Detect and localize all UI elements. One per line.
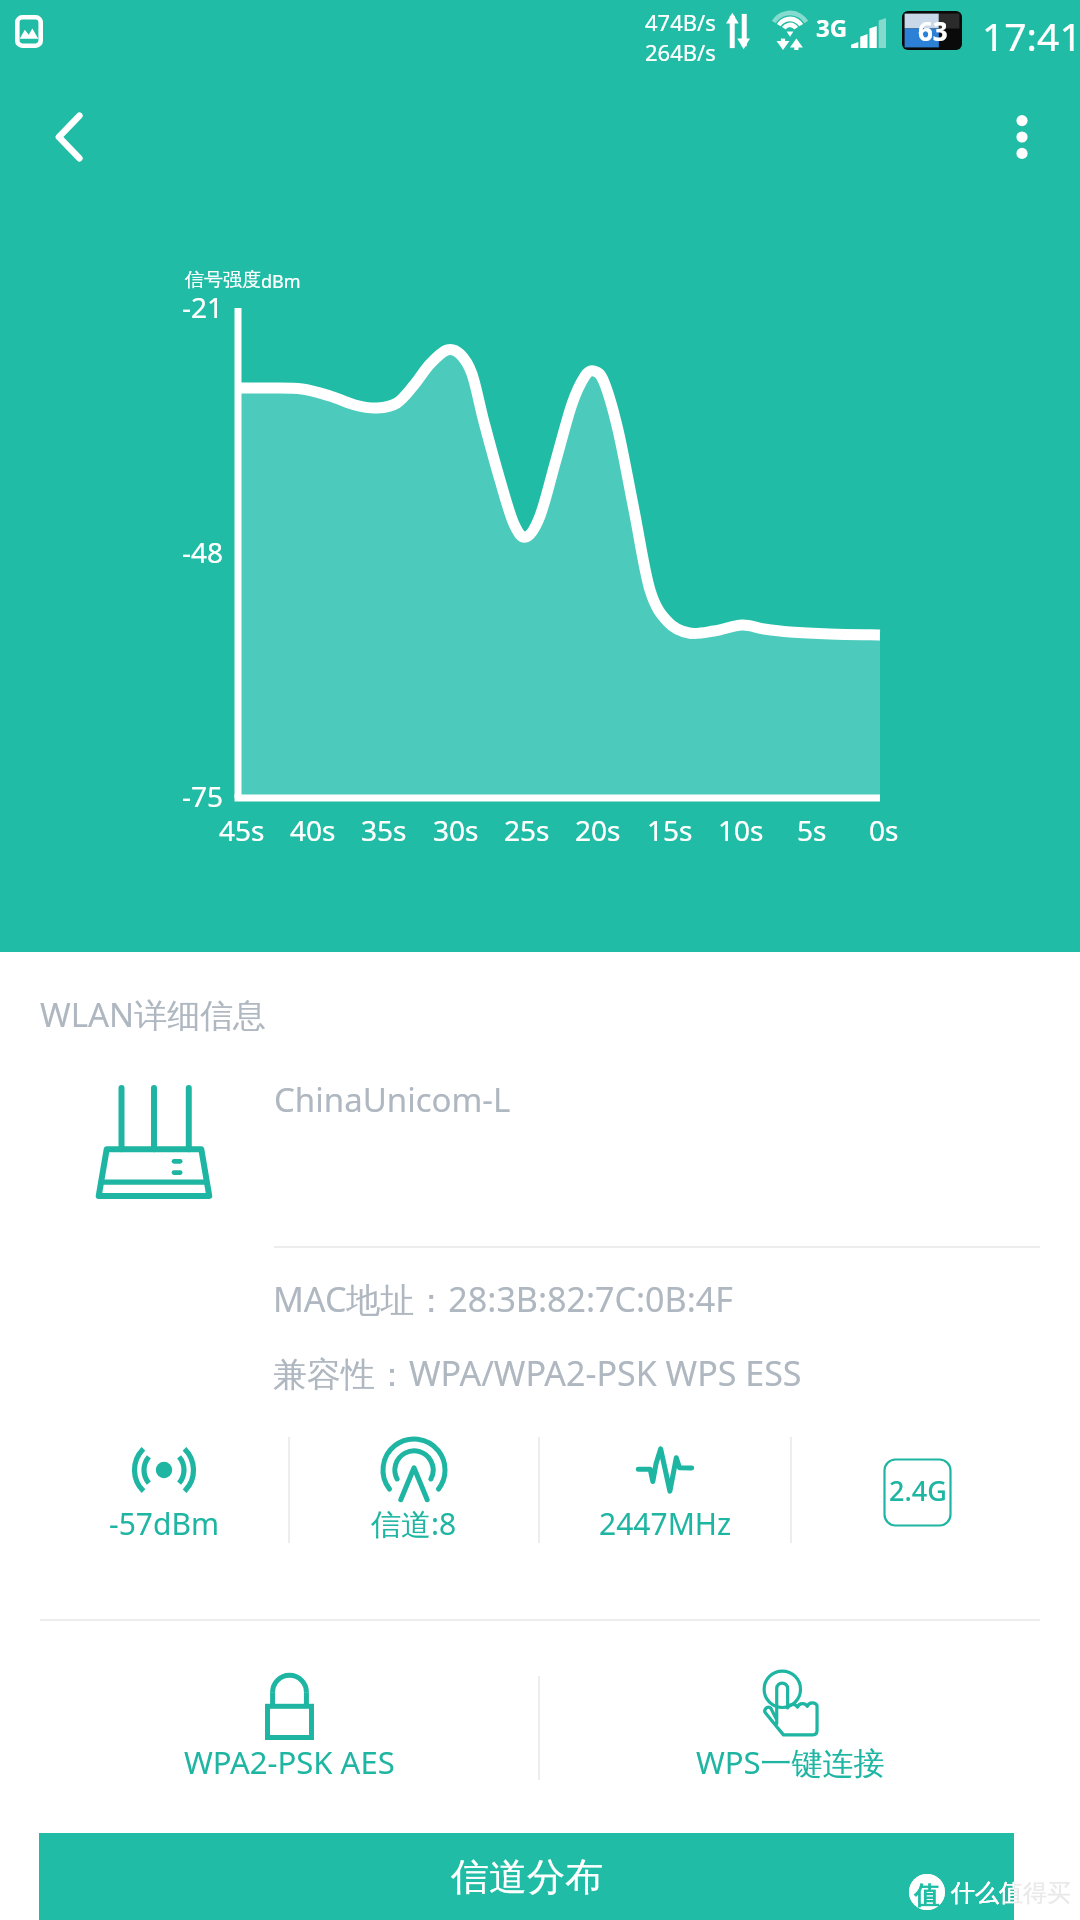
staticText: WPA2-PSK AES <box>184 1741 395 1783</box>
staticText: dBm <box>261 269 301 294</box>
staticText: -48 <box>182 533 224 571</box>
staticText: 45s <box>219 811 265 849</box>
staticText: 什么值得买 <box>951 1878 1071 1908</box>
staticText: 35s <box>361 811 407 849</box>
staticText: 2447MHz <box>599 1503 732 1544</box>
button[interactable]: WPA2-PSK AES <box>40 1665 538 1805</box>
button[interactable]: 信道:8 <box>290 1437 538 1557</box>
staticText: 5s <box>797 811 827 849</box>
staticText: 10s <box>718 811 764 849</box>
staticText: 2.4G <box>889 1472 947 1509</box>
staticText: 值 <box>914 1880 939 1911</box>
staticText: 值 <box>914 1880 939 1911</box>
button[interactable]: -57dBm <box>40 1437 288 1557</box>
staticText: 25s <box>504 811 550 849</box>
staticText: 3G <box>816 11 848 44</box>
staticText: 40s <box>290 811 336 849</box>
staticText: 信道分布 <box>451 1853 603 1901</box>
staticText: 63 <box>918 13 948 48</box>
staticText: -75 <box>182 777 224 815</box>
button[interactable]: Back <box>21 97 117 177</box>
staticText: -57dBm <box>109 1503 219 1544</box>
staticText: 20s <box>575 811 621 849</box>
staticText: MAC地址：28:3B:82:7C:0B:4F <box>273 1276 733 1322</box>
staticText: 17:41 <box>982 9 1080 62</box>
staticText: WPS一键连接 <box>696 1741 885 1783</box>
staticText: 264B/s <box>645 37 716 67</box>
staticText: 信道:8 <box>371 1503 457 1544</box>
button[interactable]: More options <box>974 97 1070 177</box>
staticText: 15s <box>647 811 693 849</box>
staticText: 0s <box>869 811 899 849</box>
staticText: 30s <box>433 811 479 849</box>
staticText: 信号强度 <box>185 268 261 292</box>
staticText: WLAN详细信息 <box>40 992 267 1037</box>
button[interactable]: 2.4G band <box>792 1437 1040 1543</box>
staticText: 474B/s <box>645 7 716 37</box>
staticText: -21 <box>182 288 224 326</box>
staticText: ChinaUnicom-L <box>274 1077 511 1122</box>
button[interactable]: 信道分布 <box>39 1833 1014 1920</box>
button[interactable]: WPS一键连接 <box>540 1665 1040 1805</box>
button[interactable]: 2447MHz <box>540 1437 790 1557</box>
staticText: 兼容性：WPA/WPA2-PSK WPS ESS <box>273 1350 802 1396</box>
staticText: 什么值得买 <box>951 1878 1014 1913</box>
